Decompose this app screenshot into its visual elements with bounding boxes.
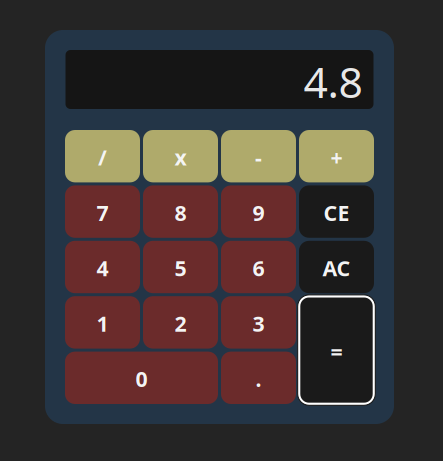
- button[interactable]: 0: [65, 352, 218, 404]
- button[interactable]: -: [221, 130, 296, 182]
- button[interactable]: 3: [221, 296, 296, 349]
- staticText: 1: [96, 309, 108, 337]
- button[interactable]: 7: [65, 185, 140, 238]
- staticText: /: [98, 143, 107, 171]
- button[interactable]: +: [299, 130, 374, 182]
- staticText: x: [174, 143, 186, 171]
- staticText: +: [330, 143, 342, 171]
- staticText: 2: [174, 309, 186, 337]
- button[interactable]: =: [299, 296, 374, 404]
- button[interactable]: 2: [143, 296, 218, 349]
- staticText: .: [255, 365, 261, 393]
- button[interactable]: /: [65, 130, 140, 182]
- staticText: 7: [96, 198, 108, 227]
- staticText: 3: [252, 309, 264, 337]
- button[interactable]: .: [221, 352, 296, 404]
- staticText: CE: [323, 198, 349, 227]
- button[interactable]: 1: [65, 296, 140, 349]
- staticText: 4: [96, 254, 108, 282]
- staticText: 6: [252, 254, 264, 282]
- staticText: AC: [322, 254, 350, 282]
- staticText: 4.8: [303, 53, 362, 110]
- button[interactable]: 6: [221, 241, 296, 293]
- button[interactable]: CE: [299, 185, 374, 238]
- staticText: =: [330, 337, 342, 365]
- button[interactable]: 4: [65, 241, 140, 293]
- staticText: 0: [135, 365, 147, 393]
- staticText: 8: [174, 198, 186, 227]
- button[interactable]: x: [143, 130, 218, 182]
- staticText: 9: [252, 198, 264, 227]
- staticText: 5: [174, 254, 186, 282]
- button[interactable]: 9: [221, 185, 296, 238]
- staticText: -: [255, 143, 262, 171]
- button[interactable]: 8: [143, 185, 218, 238]
- button[interactable]: 5: [143, 241, 218, 293]
- button[interactable]: AC: [299, 241, 374, 293]
